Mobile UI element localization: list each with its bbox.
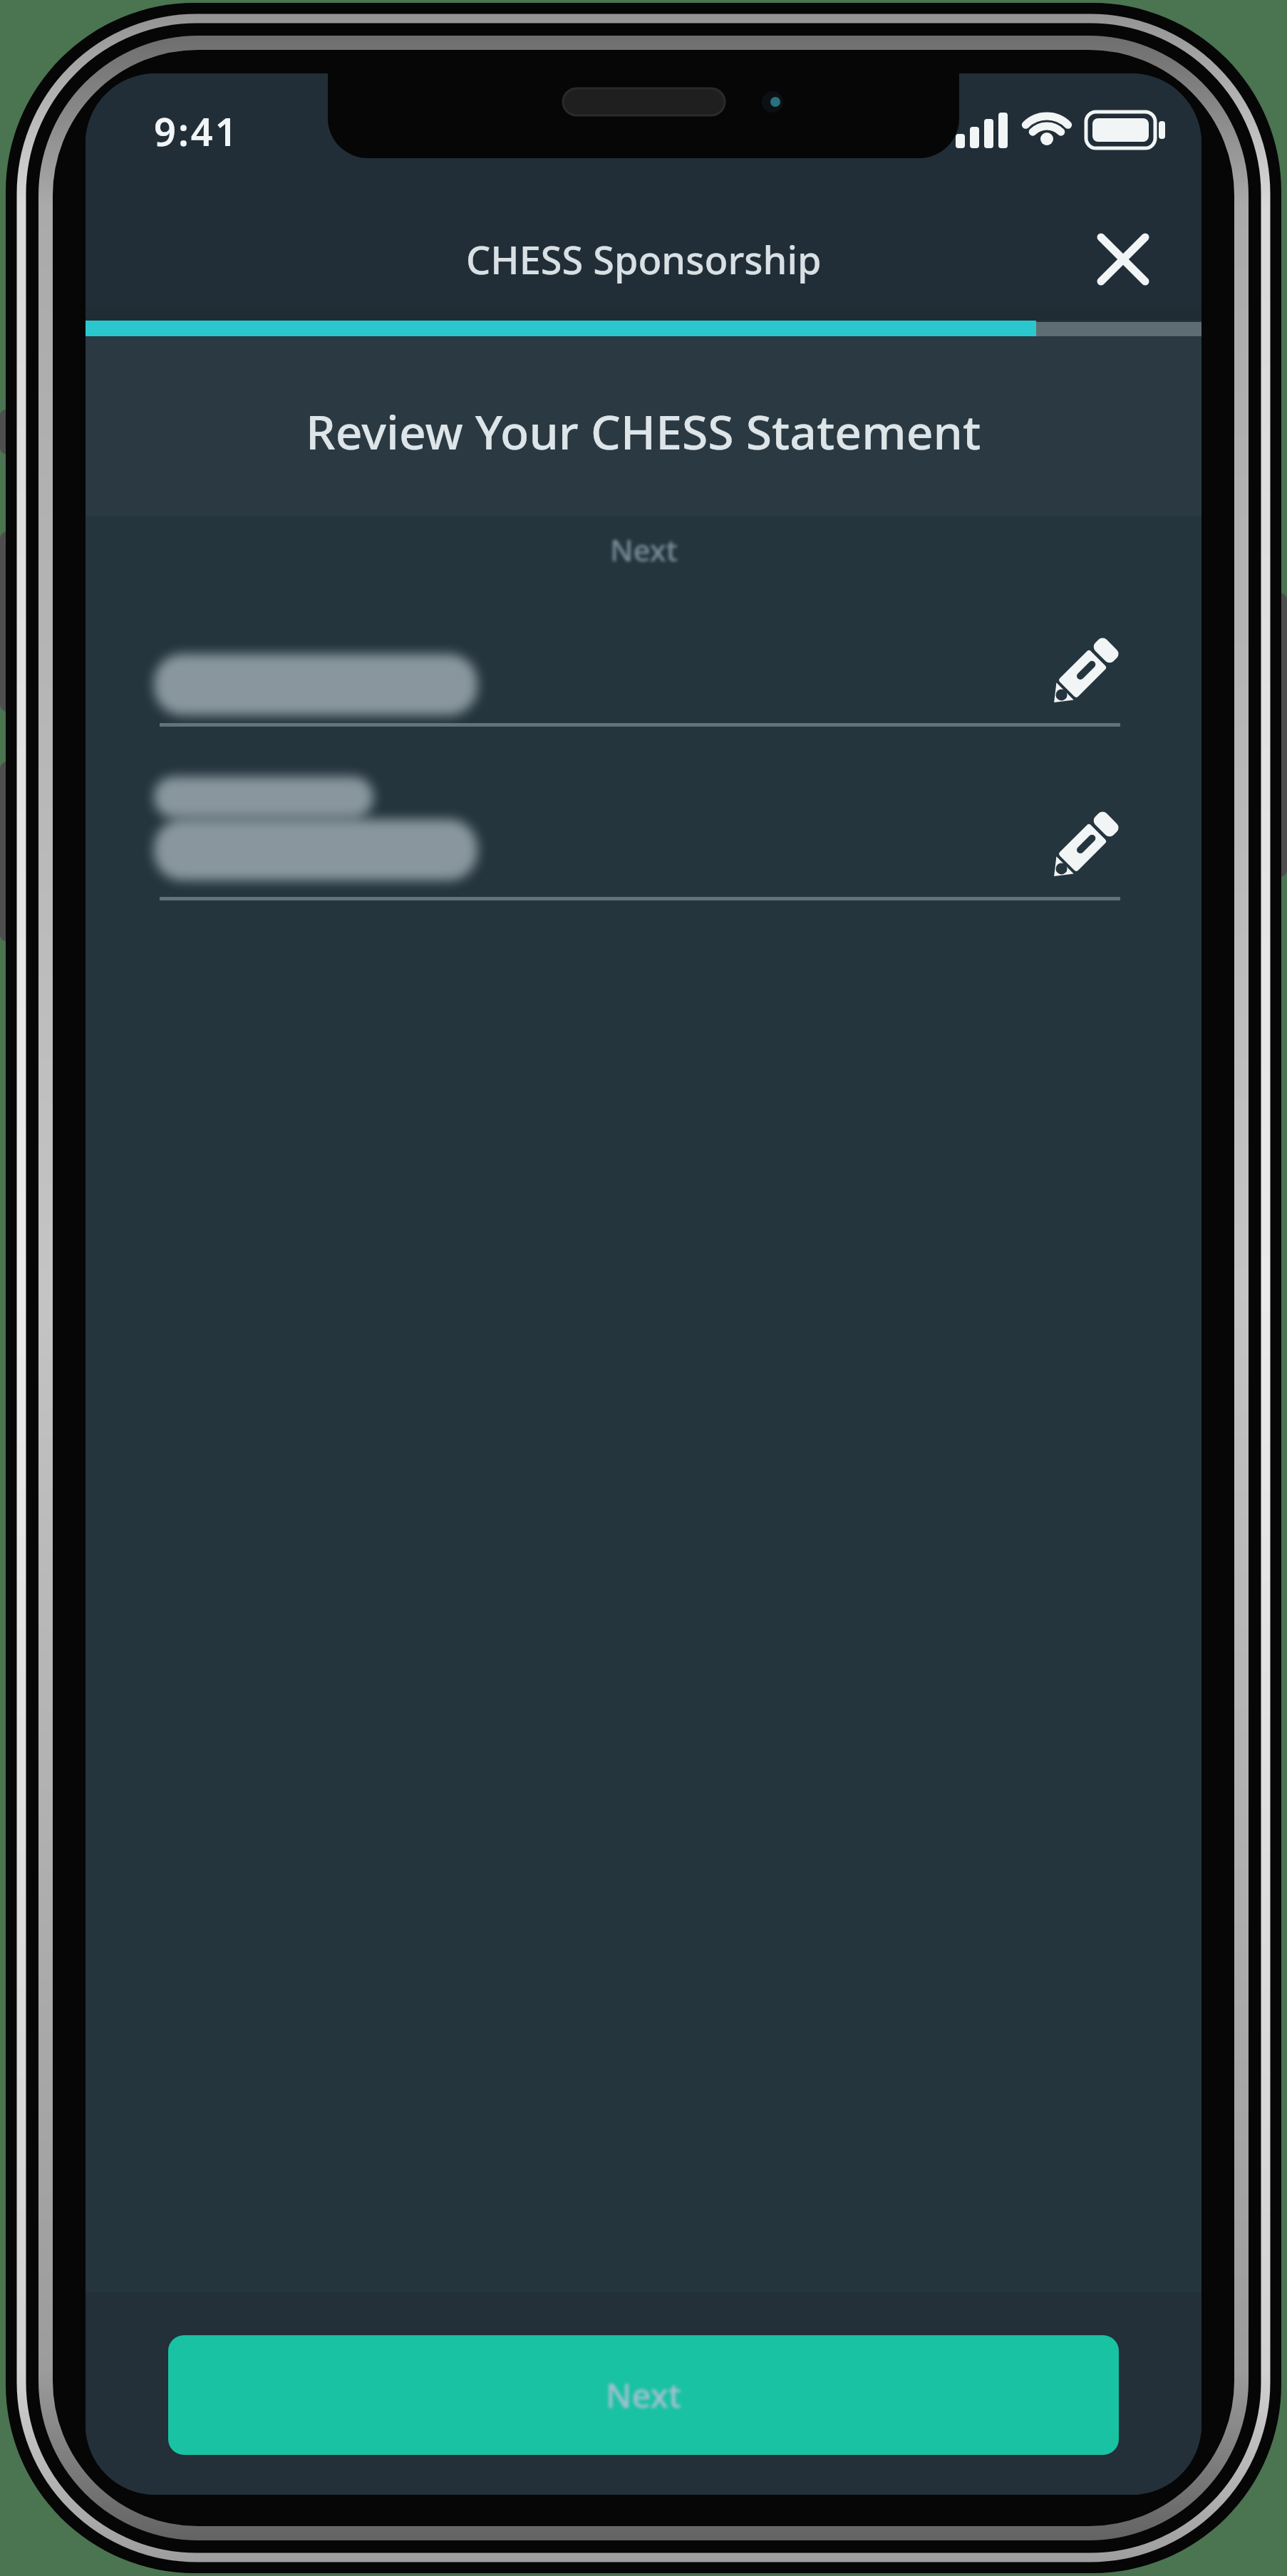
- staticText: Next: [606, 2372, 682, 2418]
- button[interactable]: [1040, 803, 1126, 891]
- staticText: Next: [610, 529, 678, 570]
- button[interactable]: [1089, 225, 1157, 294]
- button[interactable]: [1040, 629, 1126, 717]
- staticText: 9:41: [154, 105, 239, 157]
- staticText: CHESS Sponsorship: [466, 233, 822, 286]
- staticText: Review Your CHESS Statement: [306, 399, 981, 463]
- button[interactable]: Next: [168, 2335, 1119, 2455]
